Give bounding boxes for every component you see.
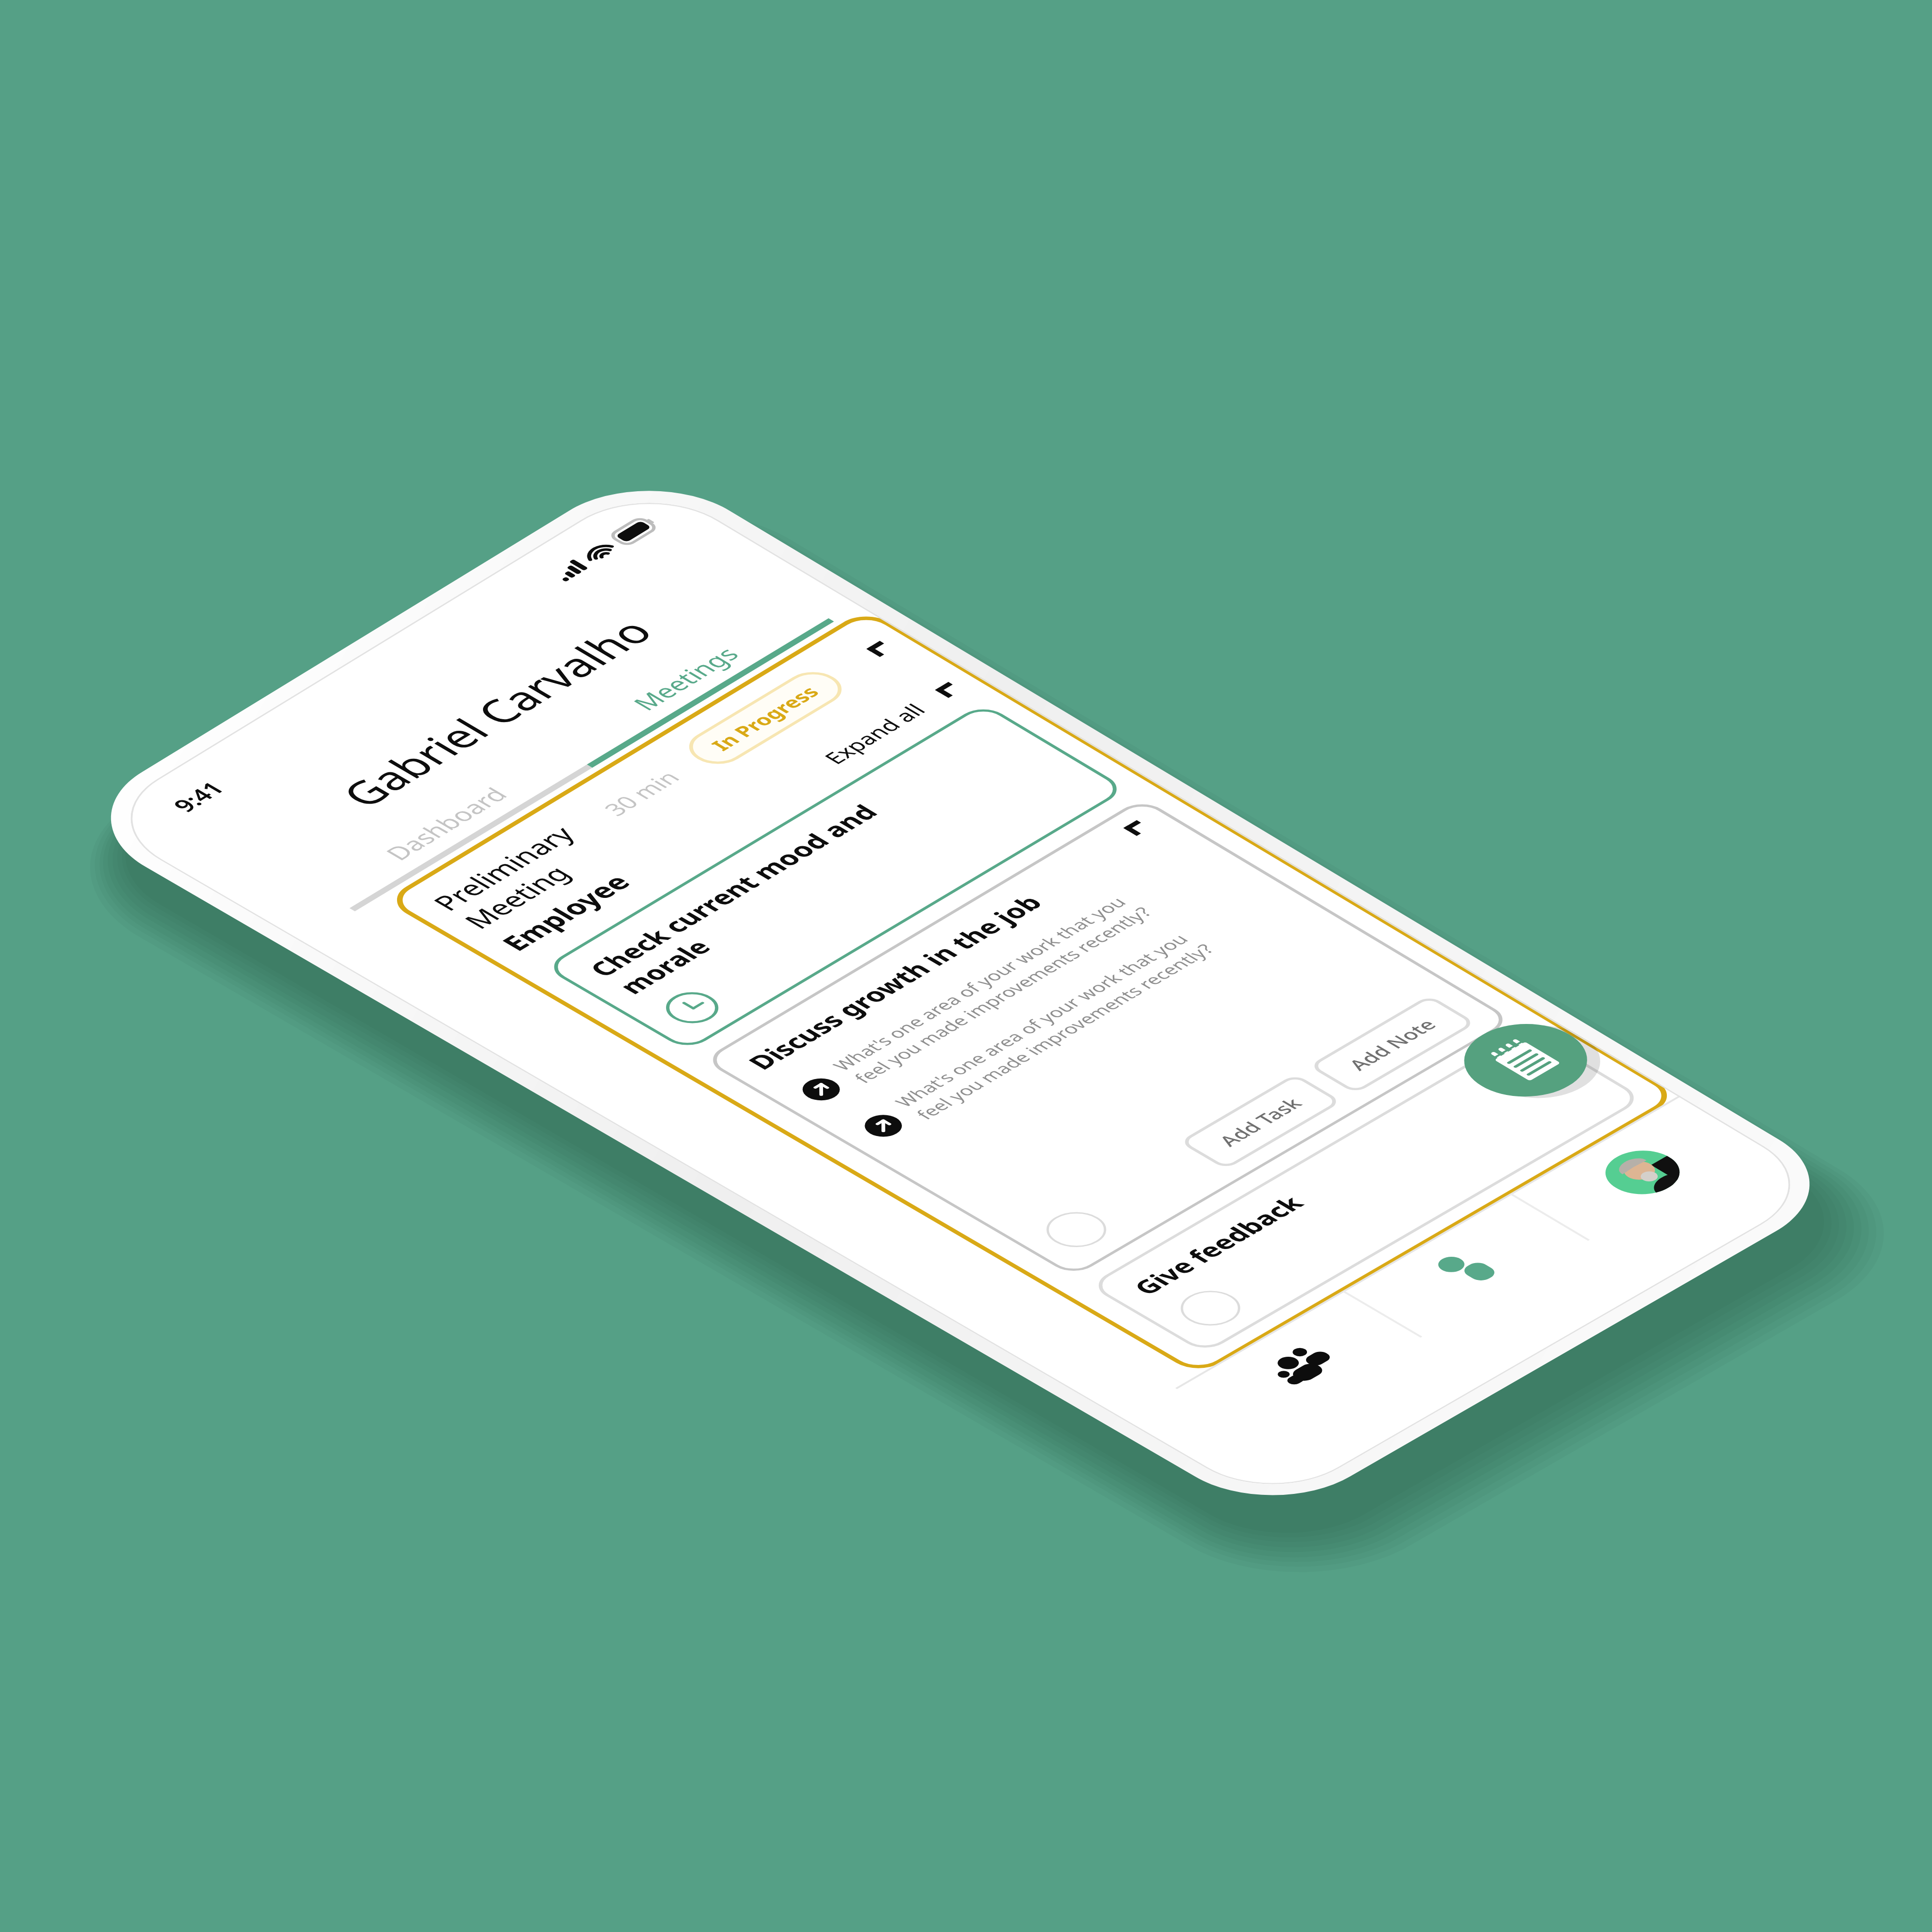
- button[interactable]: Check current mood and morale: [543, 703, 1128, 1051]
- staticText: What's one area of your work that you fe…: [826, 890, 1158, 1086]
- button[interactable]: Discuss growth in the job: [702, 798, 1513, 1277]
- staticText: Expand all: [817, 699, 933, 768]
- staticText: Dashboard: [377, 782, 516, 865]
- button[interactable]: Add Note: [1308, 995, 1476, 1094]
- staticText: Employee: [492, 868, 641, 957]
- staticText: In Progress: [704, 681, 827, 755]
- button[interactable]: Meetings: [544, 592, 829, 764]
- staticText: Gabriel Carvalho: [326, 609, 666, 816]
- staticText: Add Note: [1341, 1014, 1443, 1074]
- staticText: Add Task: [1212, 1093, 1309, 1150]
- button[interactable]: In Progress: [677, 665, 853, 771]
- button[interactable]: Account: [1511, 1096, 1829, 1283]
- staticText: 30 min: [596, 765, 687, 820]
- staticText: Discuss growth in the job: [739, 889, 1052, 1075]
- button[interactable]: Team: [1176, 1291, 1493, 1476]
- staticText: Check current mood and morale: [580, 799, 916, 999]
- button[interactable]: Add Task: [1179, 1074, 1342, 1170]
- staticText: 9:41: [165, 777, 231, 816]
- button[interactable]: Profile: [1344, 1194, 1660, 1379]
- staticText: Give feedback: [1125, 1190, 1312, 1300]
- button[interactable]: Dashboard: [306, 739, 587, 908]
- button[interactable]: Give feedback: [1088, 1028, 1644, 1354]
- staticText: Preliminary Meeting: [424, 820, 614, 934]
- button[interactable]: Expand all: [817, 678, 967, 768]
- staticText: What's one area of your work that you fe…: [888, 927, 1220, 1123]
- button[interactable]: New note: [1439, 1009, 1613, 1112]
- staticText: Meetings: [624, 642, 747, 716]
